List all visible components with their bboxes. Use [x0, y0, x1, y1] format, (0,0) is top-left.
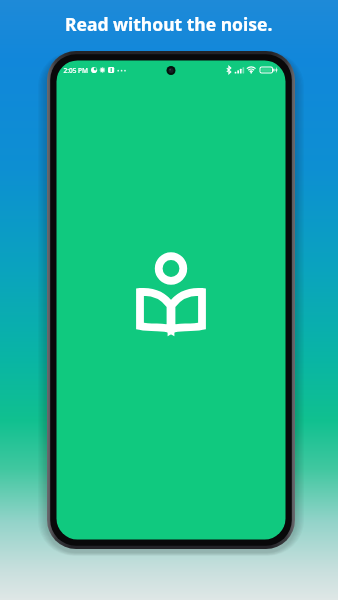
button[interactable]: App logo: open book reader — [136, 250, 202, 336]
